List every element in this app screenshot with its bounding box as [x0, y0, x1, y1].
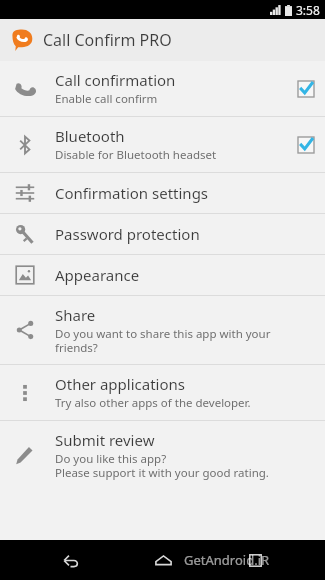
staticText: Other applications [55, 374, 185, 394]
staticText: Do you like this app? Please support it … [55, 451, 269, 480]
button[interactable]: Submit review [0, 421, 325, 489]
button[interactable]: Call confirmation [0, 61, 325, 116]
staticText: GetAndroid.iR [184, 551, 270, 569]
staticText: Enable call confirm [55, 91, 158, 107]
button[interactable]: Back [47, 540, 93, 580]
button[interactable]: Toggle [297, 136, 315, 154]
button[interactable]: Password protection [0, 214, 325, 254]
button[interactable]: Bluetooth [0, 117, 325, 172]
staticText: Password protection [55, 224, 200, 244]
staticText: Share [55, 305, 96, 325]
staticText: Confirmation settings [55, 183, 209, 203]
button[interactable]: Toggle [297, 80, 315, 98]
button[interactable]: Recent apps [232, 540, 278, 580]
staticText: Call Confirm PRO [43, 29, 172, 51]
staticText: Submit review [55, 430, 155, 450]
button[interactable]: Share [0, 296, 325, 364]
staticText: Disable for Bluetooth headset [55, 147, 217, 163]
button[interactable]: Home [140, 540, 186, 580]
button[interactable]: Appearance [0, 255, 325, 295]
staticText: Do you want to share this app with your … [55, 326, 315, 355]
button[interactable]: Confirmation settings [0, 173, 325, 213]
staticText: Appearance [55, 265, 140, 285]
staticText: Call confirmation [55, 70, 176, 90]
button[interactable]: Other applications [0, 365, 325, 420]
staticText: 3:58 [296, 2, 320, 18]
staticText: Bluetooth [55, 126, 125, 146]
staticText: Try also other apps of the developer. [55, 395, 251, 411]
